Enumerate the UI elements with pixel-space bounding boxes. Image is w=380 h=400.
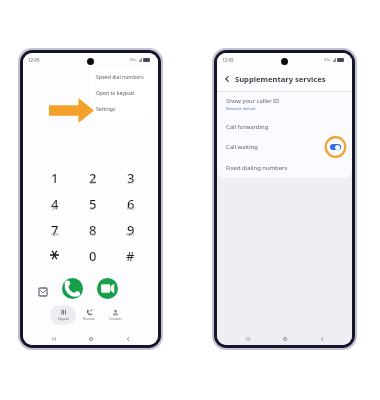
staticText: Contacts [109,317,122,321]
staticText: 12:45 [222,57,234,63]
button[interactable]: Home [278,332,291,345]
button[interactable]: Back [315,332,328,345]
staticText: Open to keypad [96,90,134,97]
button[interactable]: Open to keypad [91,85,155,101]
button[interactable]: Keypad [50,305,76,325]
button[interactable]: 6 [119,196,142,213]
staticText: 5 [89,195,97,212]
staticText: Network default [226,106,256,111]
button[interactable]: 5 [81,196,104,213]
staticText: # [126,247,135,264]
button[interactable]: 4 [43,196,66,213]
staticText: 4 [51,195,59,212]
staticText: WXYZ [126,233,135,237]
staticText: Fixed dialing numbers [226,164,288,172]
button[interactable]: 7 [43,222,66,239]
staticText: ABC [90,181,96,185]
staticText: Keypad [58,317,69,321]
button[interactable]: Speed dial numbers [91,69,155,85]
staticText: Speed dial numbers [96,74,144,81]
button[interactable]: Recents [76,305,102,325]
staticText: 0 [89,247,97,264]
button[interactable] [43,248,66,265]
button[interactable]: 9 [119,222,142,239]
button[interactable]: Video call [97,278,118,299]
button[interactable]: 0 [81,248,104,265]
staticText: 90+ [324,57,332,63]
button[interactable]: 2 [81,170,104,187]
staticText: Call forwarding [226,123,269,131]
button[interactable]: Recents [241,332,254,345]
staticText: Supplementary services [235,74,326,84]
button[interactable]: # [119,248,142,265]
staticText: TUV [90,233,96,237]
staticText: Recents [83,317,95,321]
button[interactable]: Call waiting [217,137,352,157]
button[interactable]: Fixed dialing numbers [217,157,352,178]
button[interactable]: Contacts [102,305,128,325]
staticText: 12:45 [28,57,40,63]
button[interactable]: Recents [47,332,60,345]
button[interactable]: Call [62,278,83,299]
staticText: JKL [90,207,95,211]
button[interactable]: 1 [43,170,66,187]
staticText: 7 [51,221,59,238]
staticText: 6 [127,195,135,212]
staticText: 2 [89,169,97,186]
staticText: GHI [52,207,58,211]
staticText: Settings [96,106,116,113]
button[interactable]: Show your caller ID [217,92,352,116]
staticText: 3 [127,169,135,186]
staticText: PQRS [51,233,59,237]
button[interactable]: Home [84,332,97,345]
staticText: Call waiting [226,143,258,151]
button[interactable]: 8 [81,222,104,239]
button[interactable]: Back [121,332,134,345]
staticText: 9 [127,221,135,238]
button[interactable]: 3 [119,170,142,187]
staticText: 90+ [130,57,138,63]
button[interactable]: Call forwarding [217,116,352,137]
button[interactable]: Message [39,288,47,296]
button[interactable]: Settings [91,101,155,117]
staticText: + [92,259,94,263]
staticText: MNO [127,207,135,211]
button[interactable]: Back [221,73,233,85]
staticText: DEF [128,181,134,185]
staticText: 8 [89,221,97,238]
staticText: 1 [51,169,59,186]
staticText: Show your caller ID [226,97,280,105]
